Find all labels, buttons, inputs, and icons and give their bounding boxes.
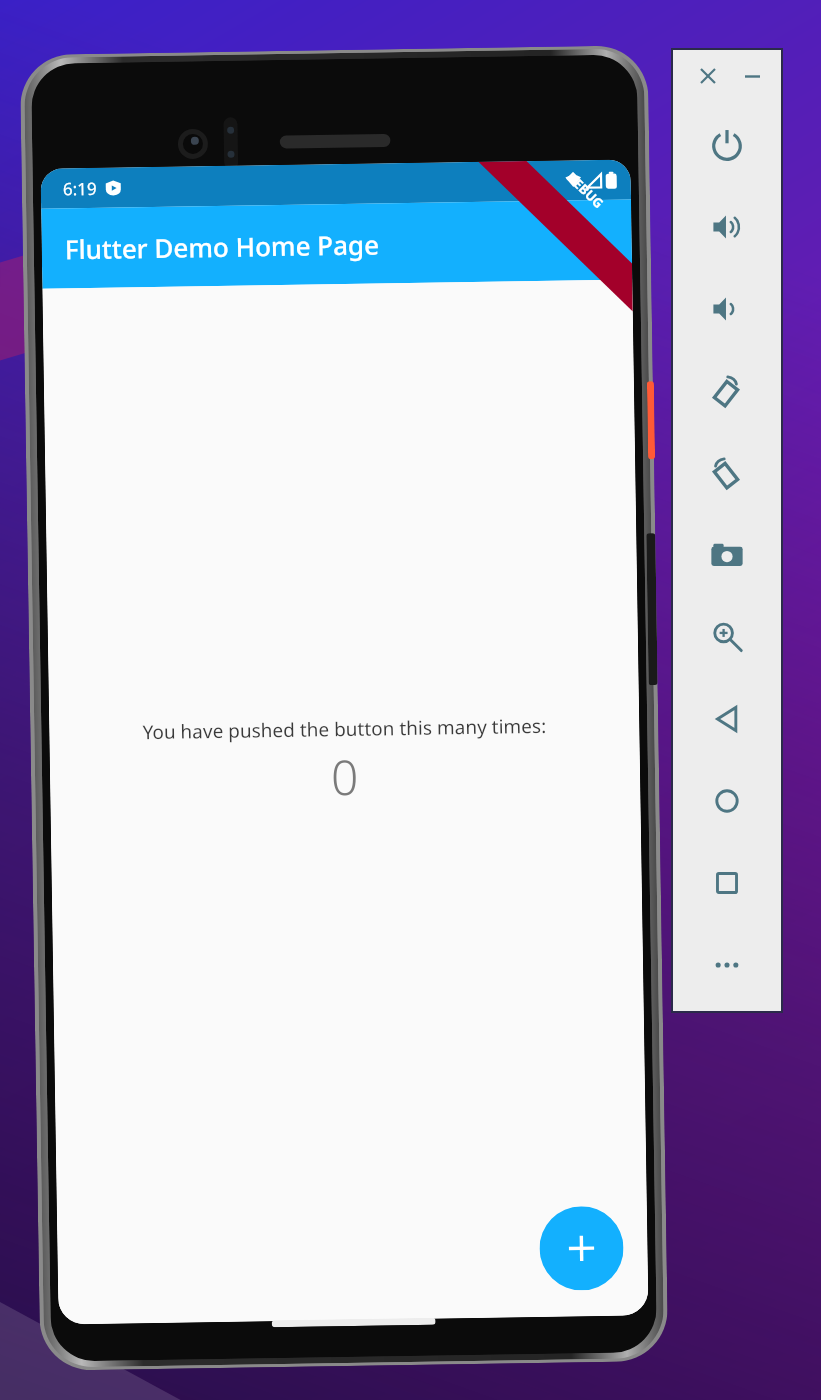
button[interactable]: Zoom — [671, 596, 783, 678]
button[interactable]: Rotate left — [671, 350, 783, 432]
staticText: You have pushed the button this many tim… — [142, 713, 547, 745]
button[interactable]: Overview — [671, 842, 783, 924]
button[interactable]: Increment — [539, 1206, 624, 1291]
button[interactable]: Volume down — [671, 268, 783, 350]
button[interactable]: Back — [671, 678, 783, 760]
button[interactable]: More — [671, 924, 783, 1006]
button[interactable]: Close — [697, 65, 719, 87]
button[interactable]: Minimize — [741, 65, 763, 87]
staticText: Flutter Demo Home Page — [64, 226, 380, 266]
staticText: DEBUG — [563, 167, 608, 213]
button[interactable]: Home — [671, 760, 783, 842]
button[interactable]: Volume up — [671, 186, 783, 268]
staticText: 0 — [331, 744, 360, 809]
button[interactable]: Take screenshot — [671, 514, 783, 596]
staticText: 6:19 — [63, 177, 97, 200]
button[interactable]: Rotate right — [671, 432, 783, 514]
button[interactable]: Power — [671, 104, 783, 186]
